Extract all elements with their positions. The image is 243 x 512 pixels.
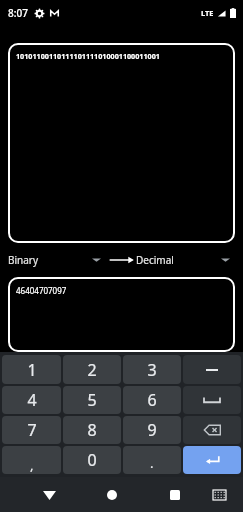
button[interactable]: 9	[123, 416, 181, 444]
button[interactable]: 7	[2, 416, 61, 444]
button[interactable]: 46404707097	[8, 277, 235, 352]
staticText: 8:07	[8, 6, 28, 20]
button[interactable]: Decimal	[136, 243, 235, 277]
button[interactable]: Switch keyboard	[204, 480, 234, 510]
staticText: 6	[147, 389, 157, 411]
staticText: 10101100110111101111010001100011001	[16, 51, 160, 61]
button[interactable]: Hide keyboard	[32, 478, 66, 512]
staticText: 46404707097	[16, 285, 67, 296]
button[interactable]: 0	[63, 446, 121, 474]
staticText: 1	[27, 359, 37, 381]
button[interactable]: 4	[2, 386, 61, 414]
staticText: 3	[147, 359, 157, 381]
button[interactable]: Home	[95, 478, 129, 512]
staticText: 8	[87, 419, 97, 441]
button[interactable]: 2	[63, 355, 121, 384]
staticText: Decimal	[136, 253, 174, 267]
staticText: 0	[87, 449, 97, 471]
button[interactable]: ,	[2, 446, 61, 474]
button[interactable]: 5	[63, 386, 121, 414]
button[interactable]: 1	[2, 355, 61, 384]
button[interactable]: 10101100110111101111010001100011001	[8, 43, 235, 243]
staticText: 2	[87, 359, 97, 381]
staticText: ,	[30, 456, 34, 474]
button[interactable]: .	[123, 446, 181, 474]
staticText: LTE	[201, 8, 214, 18]
button[interactable]: Backspace	[183, 416, 241, 444]
button[interactable]: 6	[123, 386, 181, 414]
button[interactable]: Recent apps	[158, 478, 192, 512]
staticText: 4	[27, 389, 37, 411]
staticText: .	[150, 454, 154, 472]
staticText: 5	[87, 389, 97, 411]
staticText: Binary	[8, 253, 39, 267]
staticText: 9	[147, 419, 157, 441]
staticText: 7	[27, 419, 37, 441]
button[interactable]: 8	[63, 416, 121, 444]
button[interactable]: Space	[183, 386, 241, 414]
button[interactable]: Binary	[8, 243, 106, 277]
button[interactable]: 3	[123, 355, 181, 384]
button[interactable]: Minus	[183, 355, 241, 384]
button[interactable]: Enter	[183, 446, 241, 474]
